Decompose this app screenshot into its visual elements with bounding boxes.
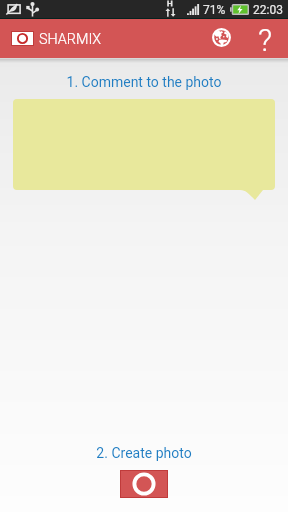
- staticText: 1. Comment to the photo: [0, 74, 288, 90]
- staticText: 2. Create photo: [0, 445, 288, 461]
- button[interactable]: Create photo: [121, 471, 167, 497]
- staticText: H: [167, 0, 173, 8]
- staticText: 71%: [203, 3, 226, 17]
- button[interactable]: Help: [245, 19, 285, 58]
- button[interactable]: Language: [201, 19, 241, 58]
- staticText: ?: [258, 22, 273, 58]
- staticText: SHARMIX: [39, 31, 102, 48]
- staticText: 22:03: [253, 3, 283, 17]
